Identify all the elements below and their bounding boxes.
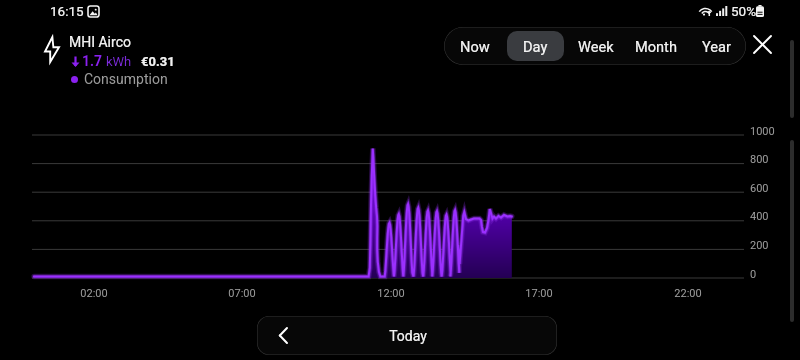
staticText: Week bbox=[578, 38, 614, 55]
staticText: 200 bbox=[750, 239, 769, 252]
staticText: 16:15 bbox=[50, 3, 84, 19]
staticText: Month bbox=[635, 38, 677, 55]
button[interactable]: Week bbox=[568, 31, 624, 61]
staticText: kWh bbox=[106, 54, 132, 69]
staticText: 1000 bbox=[750, 125, 775, 138]
button[interactable]: Today bbox=[257, 316, 557, 355]
staticText: Year bbox=[702, 38, 731, 55]
staticText: 22:00 bbox=[674, 287, 702, 300]
staticText: 07:00 bbox=[228, 287, 256, 300]
staticText: Today bbox=[389, 328, 427, 344]
button[interactable]: Year bbox=[688, 31, 744, 61]
staticText: 600 bbox=[750, 182, 769, 195]
staticText: 12:00 bbox=[377, 287, 405, 300]
staticText: 02:00 bbox=[80, 287, 108, 300]
button[interactable]: Now bbox=[446, 31, 503, 61]
button[interactable]: Day bbox=[507, 31, 564, 61]
staticText: MHI Airco bbox=[69, 34, 131, 50]
staticText: 17:00 bbox=[525, 287, 553, 300]
button[interactable]: Close bbox=[745, 27, 779, 61]
staticText: €0.31 bbox=[141, 54, 175, 69]
staticText: 400 bbox=[750, 210, 769, 223]
staticText: 800 bbox=[750, 153, 769, 166]
staticText: 0 bbox=[750, 268, 757, 281]
staticText: Day bbox=[523, 38, 548, 55]
staticText: Consumption bbox=[84, 71, 168, 87]
staticText: Now bbox=[460, 38, 490, 55]
staticText: 50% bbox=[731, 3, 757, 19]
staticText: 1.7 bbox=[82, 53, 103, 69]
button[interactable]: Month bbox=[628, 31, 684, 61]
